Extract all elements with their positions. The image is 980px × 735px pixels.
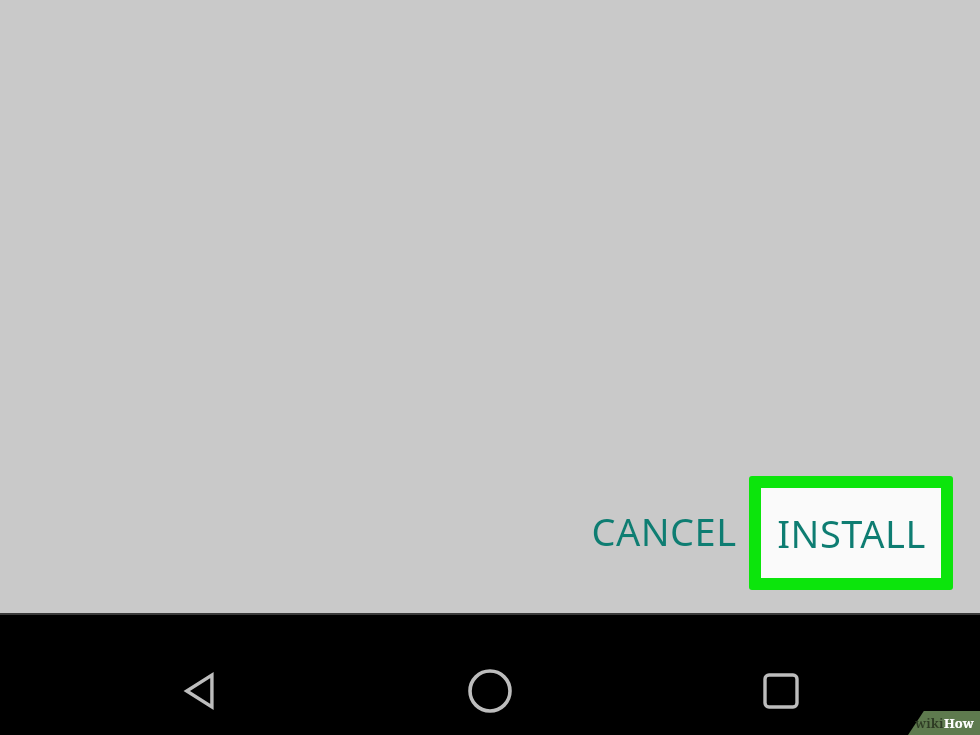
staticText: How (944, 714, 974, 732)
staticText: INSTALL (777, 507, 926, 559)
button[interactable]: INSTALL (749, 476, 953, 590)
button[interactable]: Home (460, 661, 520, 721)
button[interactable]: Recent apps (751, 661, 811, 721)
staticText: wiki (915, 714, 944, 732)
button[interactable]: Back (171, 661, 231, 721)
button[interactable]: CANCEL (588, 500, 740, 562)
staticText: CANCEL (591, 505, 737, 557)
